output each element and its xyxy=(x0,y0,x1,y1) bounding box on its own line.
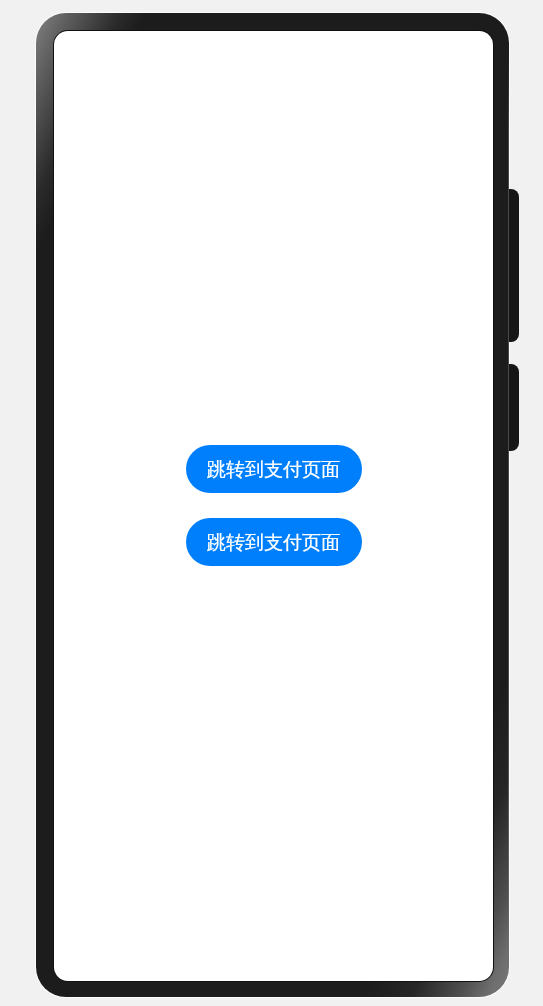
button[interactable]: Power key xyxy=(496,364,519,451)
staticText: 跳转到支付页面 xyxy=(207,531,340,555)
staticText: 跳转到支付页面 xyxy=(207,458,340,482)
button[interactable]: 跳转到支付页面 xyxy=(186,518,362,566)
button[interactable]: Volume keys xyxy=(496,189,519,342)
button[interactable]: 跳转到支付页面 xyxy=(186,445,362,493)
